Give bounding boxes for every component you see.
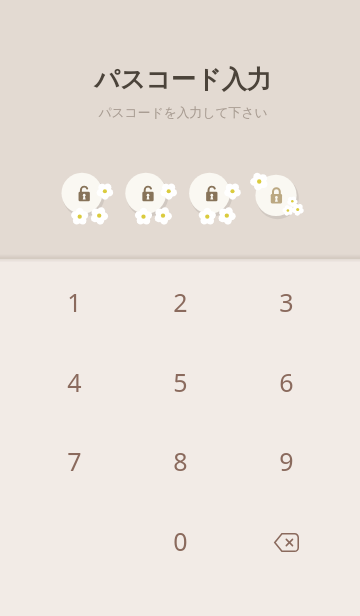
staticText: 4 (67, 365, 82, 399)
button[interactable]: 9 (253, 430, 319, 492)
button[interactable]: 8 (147, 430, 213, 492)
button[interactable]: 2 (147, 271, 213, 333)
staticText: 3 (279, 285, 294, 319)
staticText: 8 (173, 444, 188, 478)
button[interactable]: 7 (41, 430, 107, 492)
button[interactable]: Backspace (253, 510, 319, 572)
staticText: パスコード入力 (94, 64, 272, 95)
staticText: 6 (279, 365, 294, 399)
staticText: 0 (173, 524, 188, 558)
staticText: 5 (173, 365, 188, 399)
staticText: パスコードを入力して下さい (98, 105, 268, 121)
staticText: 9 (279, 444, 294, 478)
button[interactable]: 0 (147, 510, 213, 572)
button[interactable]: 6 (253, 351, 319, 413)
button[interactable]: 5 (147, 351, 213, 413)
button[interactable]: 1 (41, 271, 107, 333)
staticText: 7 (67, 444, 82, 478)
staticText: 2 (173, 285, 188, 319)
staticText: 1 (67, 285, 82, 319)
button[interactable]: 3 (253, 271, 319, 333)
button[interactable]: 4 (41, 351, 107, 413)
